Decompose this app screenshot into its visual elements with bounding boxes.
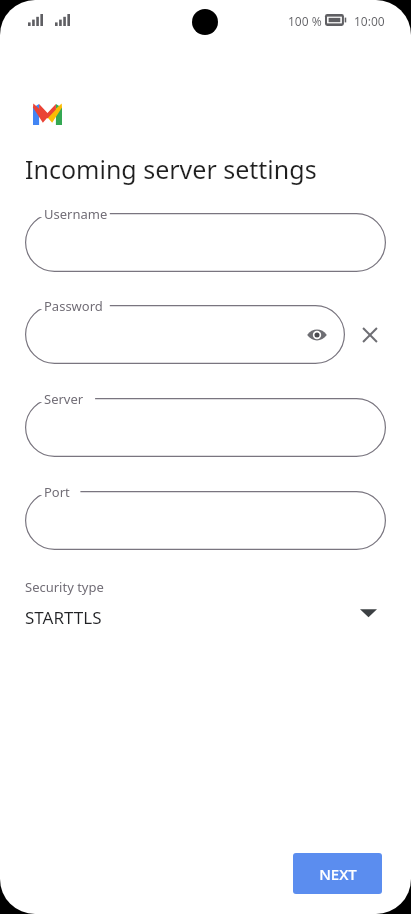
- staticText: Incoming server settings: [25, 152, 317, 186]
- staticText: NEXT: [319, 864, 357, 884]
- button[interactable]: Username: [25, 213, 386, 272]
- button[interactable]: Server: [25, 398, 386, 457]
- button[interactable]: Clear password: [358, 323, 382, 347]
- staticText: STARTTLS: [25, 606, 102, 629]
- staticText: Server: [44, 390, 84, 408]
- staticText: 10:00: [354, 13, 385, 29]
- button[interactable]: Password: [25, 305, 345, 364]
- staticText: Password: [44, 297, 103, 315]
- staticText: Username: [44, 205, 108, 223]
- button[interactable]: Show password: [305, 323, 329, 347]
- button[interactable]: Port: [25, 491, 386, 550]
- staticText: Port: [44, 483, 70, 501]
- staticText: 100 %: [288, 13, 322, 29]
- button[interactable]: Security type: [0, 574, 411, 636]
- button[interactable]: NEXT: [293, 853, 382, 894]
- staticText: Security type: [25, 578, 104, 596]
